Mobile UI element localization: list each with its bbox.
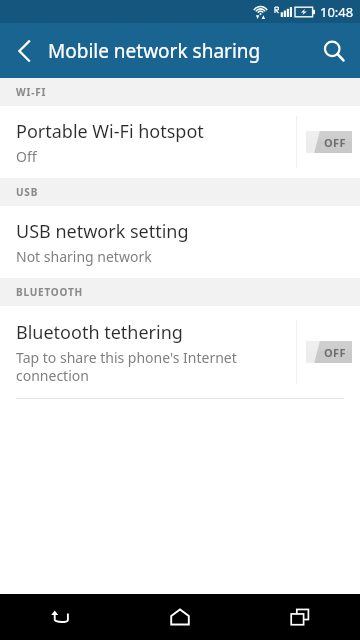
button[interactable]: Back <box>0 27 48 75</box>
button[interactable]: Portable Wi-Fi hotspot <box>0 106 296 178</box>
staticText: WI-FI <box>16 85 47 99</box>
staticText: Bluetooth tethering <box>16 320 183 345</box>
staticText: USB network setting <box>16 219 189 244</box>
staticText: 10:48 <box>320 3 354 21</box>
button[interactable]: USB network setting <box>0 206 360 278</box>
staticText: BLUETOOTH <box>16 285 84 299</box>
button[interactable]: Home <box>120 594 240 640</box>
staticText: OFF <box>324 345 346 360</box>
button[interactable]: Search <box>308 25 360 77</box>
staticText: USB <box>16 185 39 199</box>
button[interactable]: Bluetooth tethering <box>0 306 296 398</box>
button[interactable]: Back <box>0 594 120 640</box>
staticText: OFF <box>324 135 346 150</box>
button[interactable]: Portable Wi-Fi hotspot toggle, off <box>297 106 360 178</box>
staticText: Portable Wi-Fi hotspot <box>16 119 204 144</box>
button[interactable]: Bluetooth tethering toggle, off <box>297 306 360 398</box>
staticText: Tap to share this phone's Internet conne… <box>16 348 237 385</box>
staticText: Off <box>16 147 37 166</box>
staticText: Not sharing network <box>16 247 152 266</box>
button[interactable]: Recent apps <box>240 594 360 640</box>
staticText: Mobile network sharing <box>48 38 261 64</box>
